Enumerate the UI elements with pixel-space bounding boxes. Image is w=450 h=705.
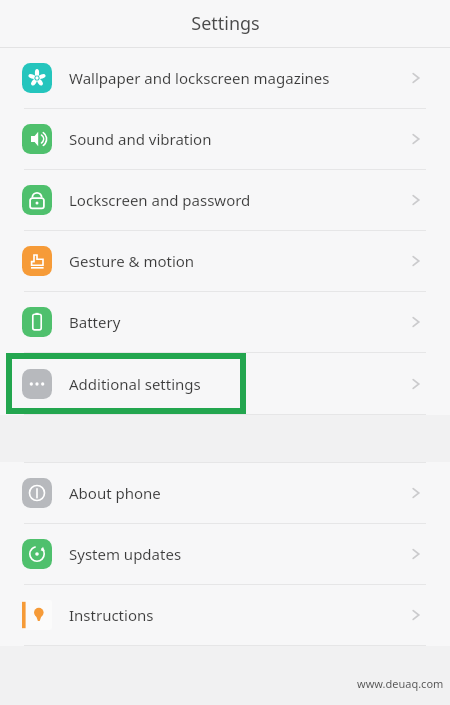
staticText: Settings [191,11,260,36]
button[interactable]: Lockscreen and password [0,170,450,230]
other: Open Sound and vibration [406,129,426,149]
staticText: System updates [69,544,182,564]
staticText: Wallpaper and lockscreen magazines [69,68,330,88]
other: Open Gesture & motion [406,251,426,271]
other: Open Instructions [406,605,426,625]
staticText: Instructions [69,605,154,625]
button[interactable]: Wallpaper and lockscreen magazines [0,48,450,108]
button[interactable]: Additional settings [0,353,450,414]
button[interactable]: System updates [0,524,450,584]
other: Open System updates [406,544,426,564]
staticText: www.deuaq.com [357,676,444,691]
staticText: Additional settings [69,374,201,394]
other: Open Additional settings [406,374,426,394]
staticText: Lockscreen and password [69,190,251,210]
button[interactable]: Battery [0,292,450,352]
button[interactable]: About phone [0,463,450,523]
other: Open About phone [406,483,426,503]
staticText: Gesture & motion [69,251,195,271]
other: Open Wallpaper and lockscreen magazines [406,68,426,88]
button[interactable]: Sound and vibration [0,109,450,169]
other: Open Battery [406,312,426,332]
staticText: Sound and vibration [69,129,212,149]
button[interactable]: Instructions [0,585,450,645]
staticText: About phone [69,483,161,503]
staticText: Battery [69,312,121,332]
other: Open Lockscreen and password [406,190,426,210]
button[interactable]: Gesture & motion [0,231,450,291]
